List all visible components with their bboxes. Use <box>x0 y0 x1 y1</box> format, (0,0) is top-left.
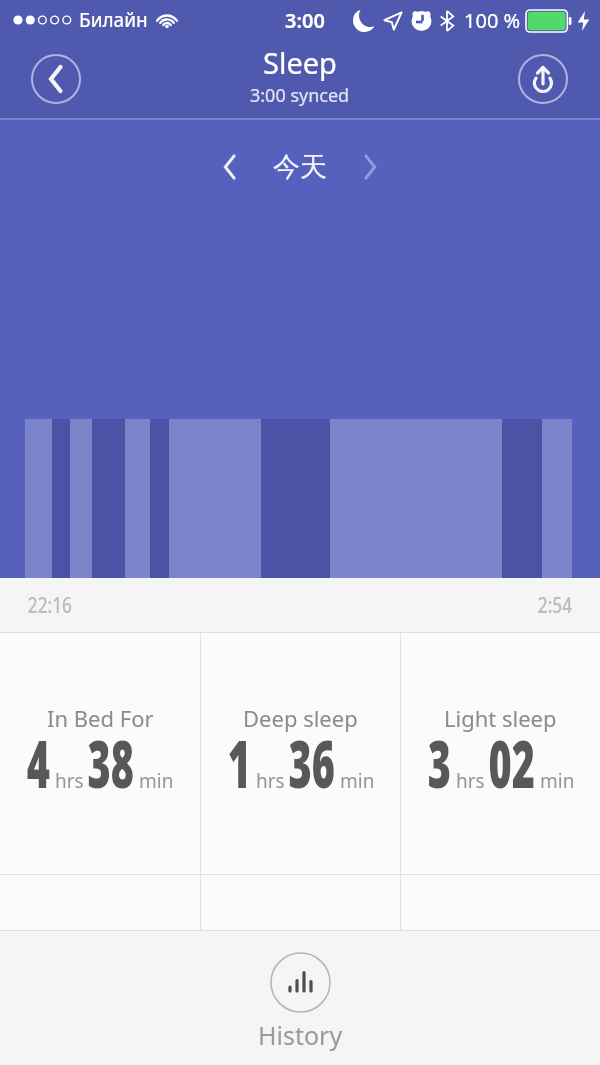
staticText: Билайн <box>79 7 148 33</box>
staticText: Light sleep <box>444 703 557 733</box>
staticText: min <box>335 767 375 794</box>
staticText: 100 % <box>464 7 521 34</box>
staticText: 4 <box>27 717 50 807</box>
staticText: min <box>134 767 174 794</box>
staticText: 3:00 synced <box>250 83 350 108</box>
staticText: Deep sleep <box>243 703 358 733</box>
staticText: 1 <box>228 717 251 807</box>
staticText: 3:00 <box>285 7 325 34</box>
staticText: Sleep <box>263 43 337 82</box>
button[interactable]: Light sleep <box>401 633 600 874</box>
button[interactable]: In Bed For <box>0 633 200 874</box>
button[interactable] <box>518 54 568 104</box>
staticText: 2:54 <box>538 591 572 620</box>
staticText: hrs <box>451 767 490 794</box>
staticText: 3 <box>428 717 451 807</box>
button[interactable]: History <box>258 952 343 1052</box>
staticText: 今天 <box>273 150 327 184</box>
staticText: 36 <box>289 717 335 807</box>
button[interactable]: Deep sleep <box>201 633 400 874</box>
staticText: 02 <box>489 717 535 807</box>
staticText: hrs <box>251 767 290 794</box>
staticText: History <box>258 1018 343 1052</box>
staticText: hrs <box>50 767 89 794</box>
button[interactable] <box>31 54 81 104</box>
staticText: 38 <box>88 717 134 807</box>
staticText: 22:16 <box>28 591 72 620</box>
button[interactable] <box>217 154 243 180</box>
staticText: min <box>535 767 575 794</box>
button[interactable] <box>357 154 383 180</box>
staticText: In Bed For <box>47 703 154 733</box>
